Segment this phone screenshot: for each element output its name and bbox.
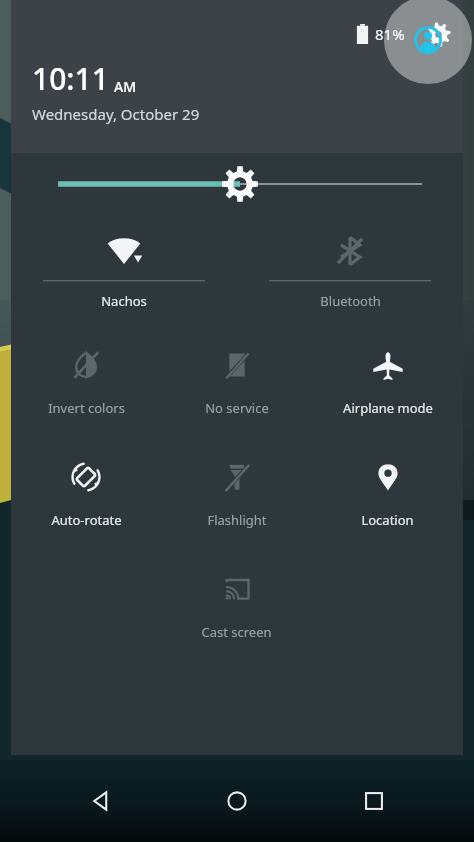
button[interactable]: Home xyxy=(200,764,274,838)
button[interactable]: Flashlight xyxy=(161,439,312,551)
staticText: Nachos xyxy=(101,292,147,310)
staticText: 81% xyxy=(375,24,405,44)
staticText: AM xyxy=(114,77,137,96)
staticText: Invert colors xyxy=(48,399,125,417)
button[interactable]: Recents xyxy=(337,764,411,838)
button[interactable]: Auto-rotate xyxy=(11,439,161,551)
staticText: Wednesday, October 29 xyxy=(32,104,200,124)
button[interactable]: Bluetooth xyxy=(237,215,463,327)
staticText: Airplane mode xyxy=(343,399,433,417)
button[interactable]: Switch user xyxy=(384,0,472,84)
staticText: No service xyxy=(205,399,269,417)
staticText: Auto-rotate xyxy=(51,511,122,529)
staticText: Cast screen xyxy=(201,623,272,641)
button[interactable]: Settings xyxy=(425,21,451,47)
staticText: Location xyxy=(361,511,414,529)
button[interactable]: Back xyxy=(63,764,137,838)
button[interactable]: Location xyxy=(312,439,463,551)
button[interactable]: No service xyxy=(161,327,312,439)
button[interactable]: Invert colors xyxy=(11,327,161,439)
staticText: Bluetooth xyxy=(320,292,381,310)
button[interactable]: Nachos xyxy=(11,215,237,327)
button[interactable]: Airplane mode xyxy=(312,327,463,439)
button[interactable]: Cast screen xyxy=(161,551,312,663)
staticText: Flashlight xyxy=(207,511,267,529)
staticText: 10:11 xyxy=(32,58,109,99)
